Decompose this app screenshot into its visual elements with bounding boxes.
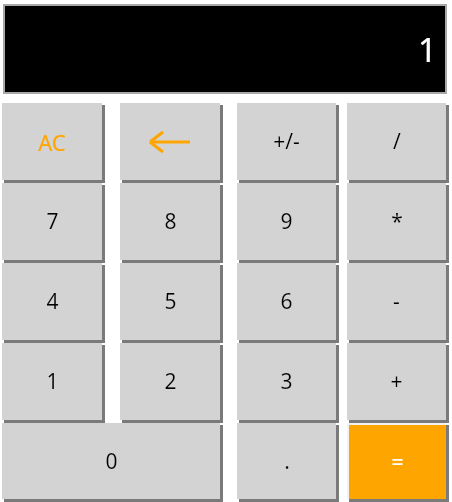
button[interactable]: 3 [237, 343, 339, 423]
button[interactable]: 4 [2, 263, 105, 343]
button[interactable]: 0 [2, 423, 223, 502]
button[interactable]: AC [2, 103, 105, 183]
staticText: + [390, 367, 403, 396]
button[interactable]: * [347, 183, 449, 263]
staticText: 8 [164, 207, 177, 236]
staticText: * [391, 207, 403, 236]
staticText: 5 [164, 287, 177, 316]
button[interactable]: 8 [120, 183, 223, 263]
staticText: 1 [46, 367, 59, 396]
button[interactable]: 7 [2, 183, 105, 263]
button[interactable]: = [347, 423, 449, 502]
staticText: 4 [46, 287, 59, 316]
staticText: 9 [280, 207, 293, 236]
staticText: 3 [280, 367, 293, 396]
button[interactable]: . [237, 423, 339, 502]
button[interactable]: 9 [237, 183, 339, 263]
button[interactable]: 1 [2, 343, 105, 423]
button[interactable]: +/- [237, 103, 339, 183]
staticText: +/- [273, 127, 300, 156]
staticText: AC [38, 127, 66, 157]
staticText: - [393, 287, 400, 316]
staticText: 1 [418, 27, 437, 72]
button[interactable]: 5 [120, 263, 223, 343]
button[interactable]: 6 [237, 263, 339, 343]
staticText: 0 [105, 447, 118, 476]
staticText: . [284, 447, 290, 476]
staticText: 7 [46, 207, 59, 236]
staticText: 2 [164, 367, 177, 396]
button[interactable]: 2 [120, 343, 223, 423]
button[interactable]: Backspace [120, 103, 223, 183]
button[interactable]: + [347, 343, 449, 423]
staticText: / [393, 127, 401, 156]
staticText: = [391, 448, 404, 477]
staticText: 6 [280, 287, 293, 316]
button[interactable]: / [347, 103, 449, 183]
button[interactable]: - [347, 263, 449, 343]
